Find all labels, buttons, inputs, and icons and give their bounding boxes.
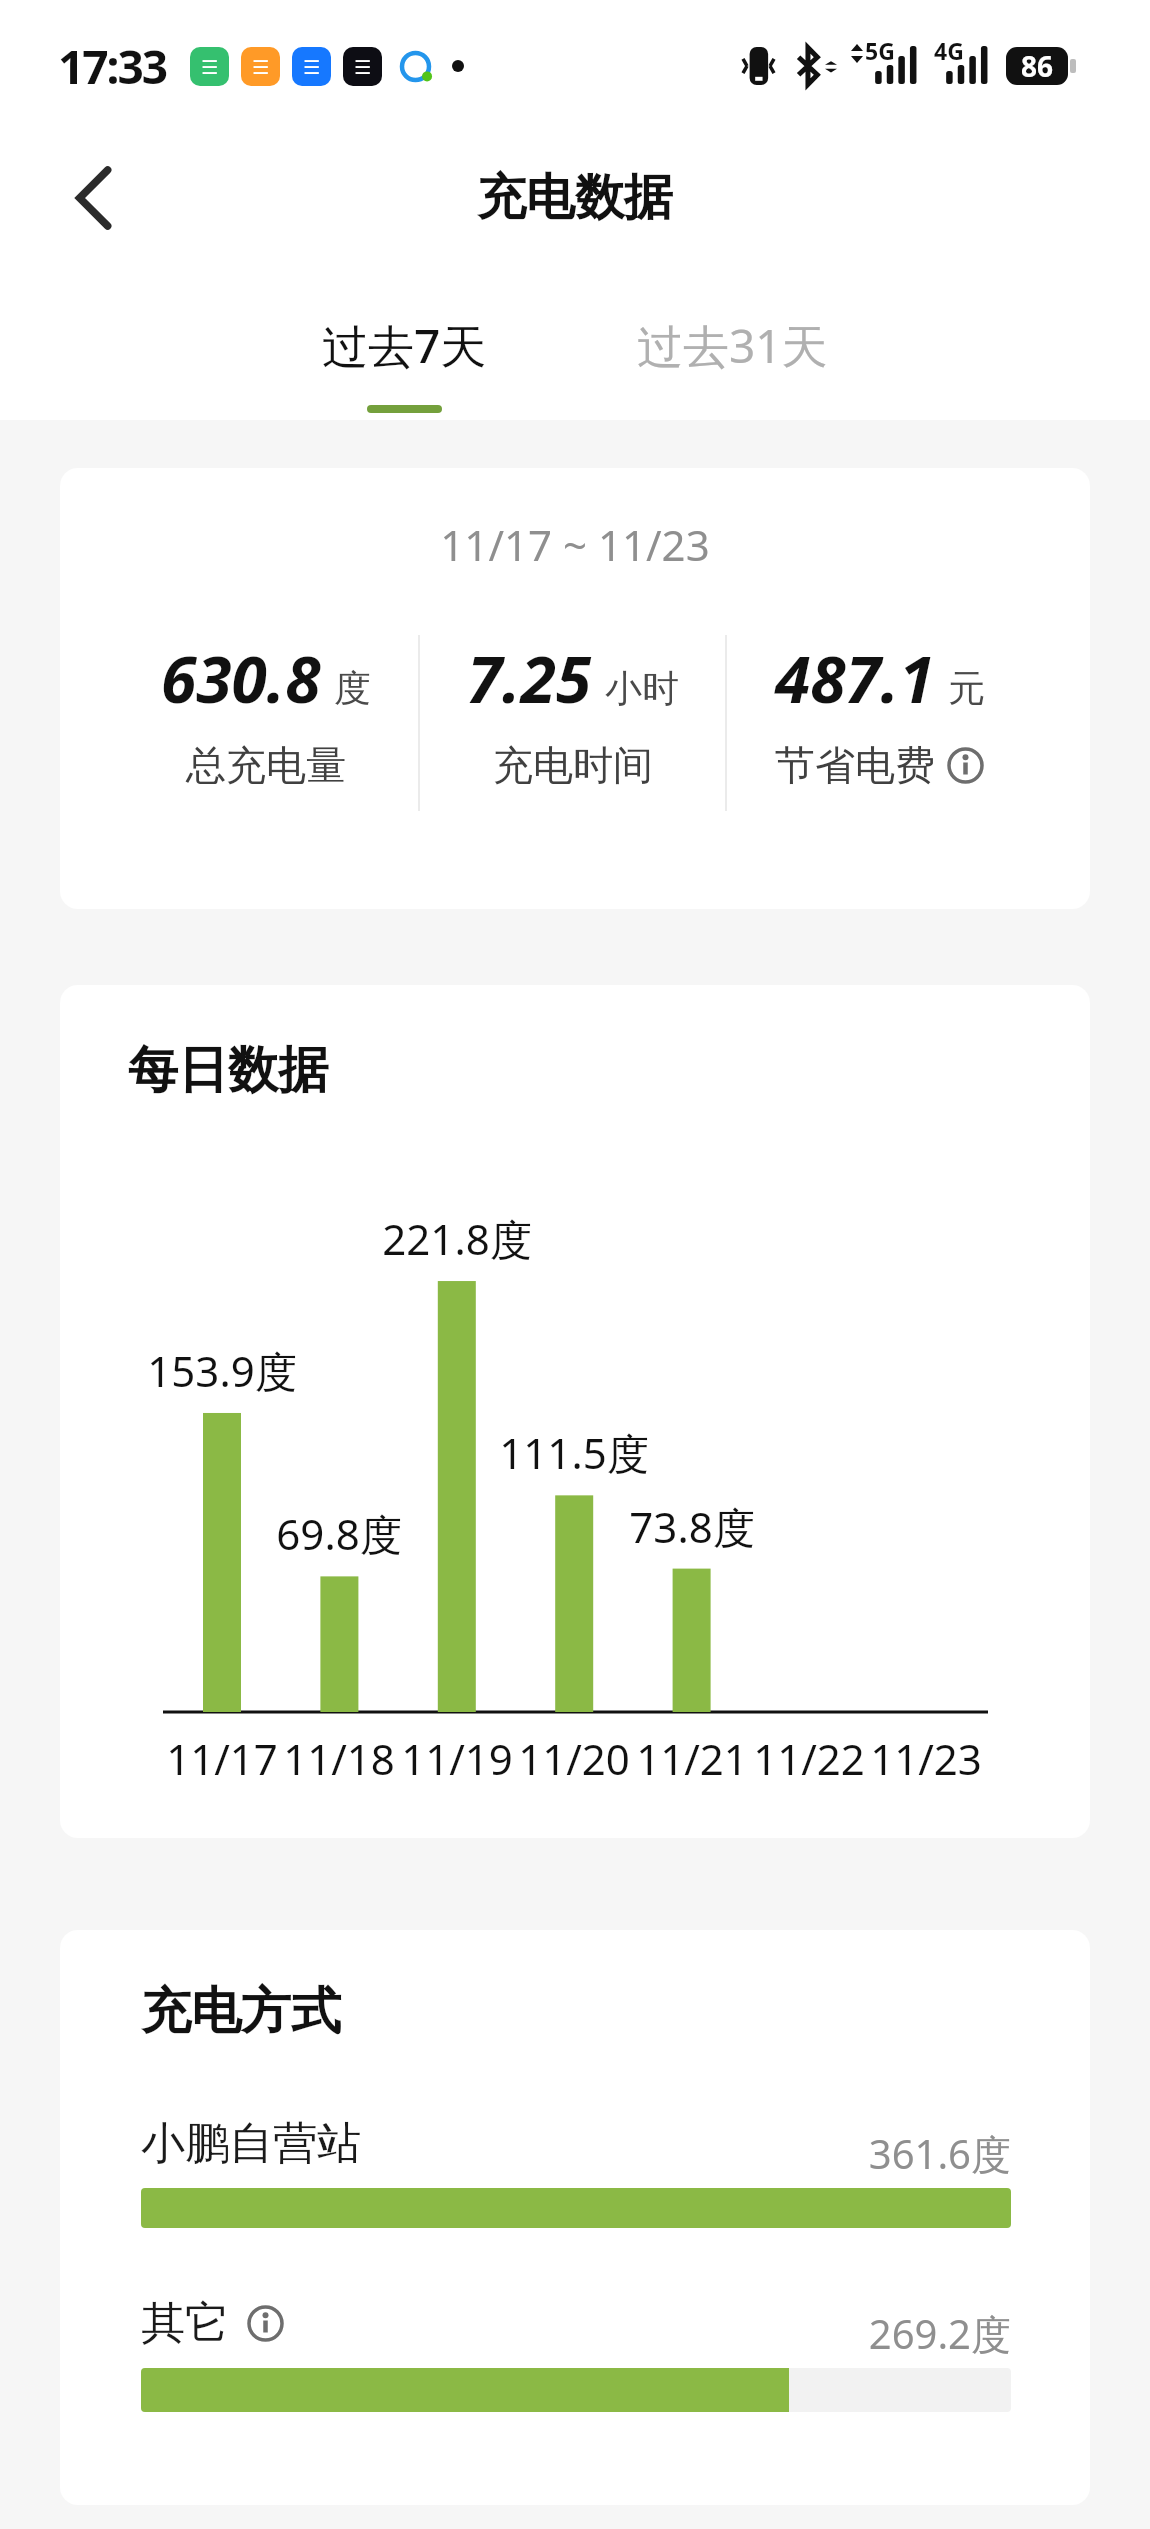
staticText: 11/22 bbox=[729, 1730, 889, 1787]
button[interactable]: 过去7天 bbox=[322, 314, 487, 413]
button[interactable] bbox=[947, 747, 984, 784]
staticText: 17:33 bbox=[58, 35, 167, 98]
button[interactable] bbox=[247, 2305, 284, 2342]
staticText: 11/18 bbox=[259, 1730, 419, 1787]
staticText: 221.8度 bbox=[347, 1210, 567, 1267]
staticText: 487.1 bbox=[775, 635, 935, 722]
staticText: ☰ bbox=[303, 56, 321, 78]
staticText: 269.2度 bbox=[760, 2306, 1011, 2361]
staticText: 充电数据 bbox=[477, 167, 673, 229]
staticText: 630.8 bbox=[161, 635, 321, 722]
staticText: 总充电量 bbox=[186, 740, 346, 790]
staticText: 小时 bbox=[605, 665, 679, 712]
staticText: 11/19 bbox=[377, 1730, 537, 1787]
staticText: 元 bbox=[948, 665, 985, 712]
staticText: 4G bbox=[934, 35, 964, 66]
staticText: 153.9度 bbox=[112, 1342, 332, 1399]
button[interactable]: 过去31天 bbox=[637, 314, 828, 377]
staticText: 73.8度 bbox=[582, 1498, 802, 1555]
staticText: 7.25 bbox=[467, 635, 592, 722]
staticText: 11/21 bbox=[612, 1730, 772, 1787]
staticText: 度 bbox=[334, 665, 371, 712]
staticText: 361.6度 bbox=[760, 2126, 1011, 2181]
staticText: 11/17 ~ 11/23 bbox=[60, 516, 1090, 573]
staticText: 小鹏自营站 bbox=[141, 2116, 361, 2171]
staticText: 111.5度 bbox=[464, 1424, 684, 1481]
staticText: 11/17 bbox=[142, 1730, 302, 1787]
staticText: ☰ bbox=[201, 56, 219, 78]
staticText: 其它 bbox=[141, 2296, 229, 2351]
staticText: 过去7天 bbox=[322, 314, 487, 377]
staticText: ☰ bbox=[354, 56, 372, 78]
button[interactable] bbox=[58, 152, 130, 244]
staticText: 每日数据 bbox=[128, 1039, 328, 1102]
staticText: 11/23 bbox=[846, 1730, 1006, 1787]
staticText: 5G bbox=[865, 35, 895, 66]
staticText: 充电时间 bbox=[493, 740, 653, 790]
staticText: 节省电费 bbox=[775, 740, 935, 790]
staticText: 11/20 bbox=[494, 1730, 654, 1787]
staticText: 过去31天 bbox=[637, 314, 828, 377]
staticText: ☰ bbox=[252, 56, 270, 78]
staticText: 86 bbox=[1021, 47, 1054, 85]
staticText: 69.8度 bbox=[229, 1505, 449, 1562]
staticText: 充电方式 bbox=[141, 1980, 341, 2043]
